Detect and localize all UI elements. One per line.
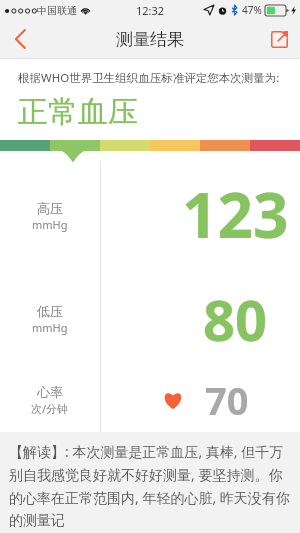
staticText: 中国联通 — [37, 4, 77, 17]
staticText: 低压 — [37, 303, 63, 319]
staticText: 测量结果 — [116, 29, 184, 50]
staticText: mmHg — [32, 217, 68, 232]
staticText: 【解读】: 本次测量是正常血压, 真棒, 但千万别自我感觉良好就不好好测量, 要… — [9, 442, 293, 530]
staticText: 次/分钟 — [31, 401, 69, 416]
button[interactable]: Share — [258, 20, 300, 58]
staticText: mmHg — [32, 320, 68, 335]
staticText: 高压 — [37, 200, 63, 216]
button[interactable]: Back — [0, 20, 40, 58]
staticText: 47% — [242, 3, 262, 17]
staticText: 70 — [205, 374, 249, 426]
staticText: 正常血压 — [18, 93, 138, 131]
staticText: 根据WHO世界卫生组织血压标准评定您本次测量为: — [18, 70, 280, 86]
staticText: 80 — [203, 281, 268, 357]
staticText: 12:32 — [136, 3, 165, 18]
staticText: 123 — [182, 172, 289, 256]
staticText: 心率 — [37, 384, 63, 400]
